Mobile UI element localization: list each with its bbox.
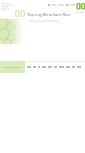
button[interactable]: Navigation — [48, 4, 75, 6]
button[interactable]: Logo — [76, 3, 85, 10]
staticText: a faint grey subtitle line g — [28, 19, 59, 23]
staticText: Top ing Merchant Rea — [27, 12, 70, 18]
